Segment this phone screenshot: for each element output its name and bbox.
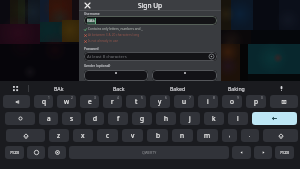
staticText: y [158,97,162,106]
staticText: 6 [165,96,167,100]
staticText: QWERTY [142,150,157,155]
staticText: d [93,114,97,123]
button[interactable]: v [122,129,143,142]
button[interactable]: . [241,129,259,142]
staticText: k [212,114,216,123]
button[interactable]: Close [83,1,92,10]
button[interactable]: b [147,129,168,142]
button[interactable]: m [197,129,218,142]
staticText: b [156,131,160,140]
button[interactable]: u [174,95,194,108]
button[interactable]: ?123 [5,146,24,159]
staticText: t [135,97,138,106]
staticText: p [254,97,258,106]
staticText: Is not already in use [88,39,119,43]
button[interactable]: , [222,129,237,142]
button[interactable]: a [39,112,58,125]
button[interactable]: z [49,129,69,142]
staticText: 7 [189,96,191,100]
button[interactable]: ?123 [275,146,294,159]
staticText: 3 [94,96,96,100]
staticText: 8 [213,96,215,100]
staticText: At least 8 characters [87,54,127,60]
staticText: ?123 [280,150,290,156]
staticText: l [237,114,239,123]
button[interactable]: j [180,112,200,125]
button[interactable]: Backspace [270,95,298,108]
staticText: r [111,97,114,106]
button[interactable]: f [108,112,128,125]
staticText: c [106,131,110,140]
staticText: q [42,97,46,106]
button[interactable] [84,70,148,81]
staticText: h [164,114,169,123]
button[interactable]: e [80,95,99,108]
button[interactable]: Symbols [5,112,35,125]
button[interactable]: Emoji [27,146,45,159]
staticText: 5 [141,96,143,100]
button[interactable]: k [204,112,224,125]
staticText: 2 [71,96,73,100]
button[interactable]: n [172,129,193,142]
button[interactable]: Settings [48,146,66,159]
button[interactable]: Enter [252,112,297,125]
button[interactable]: c [97,129,118,142]
staticText: Baked [170,85,186,92]
staticText: BAk [87,18,95,24]
button[interactable]: Back [89,81,148,95]
button[interactable]: Voice input [276,83,286,93]
button[interactable]: Baked [148,81,207,95]
button[interactable]: Shift [6,129,45,142]
button[interactable]: BAk [29,81,89,95]
staticText: 9 [237,96,239,100]
staticText: 4 [117,96,119,100]
staticText: g [140,114,144,123]
button[interactable]: Baking [207,81,266,95]
staticText: Baking [228,85,245,92]
button[interactable]: Tab [3,95,30,108]
button[interactable]: t [126,95,146,108]
button[interactable]: h [156,112,176,125]
button[interactable]: p [246,95,266,108]
staticText: x [81,131,85,140]
staticText: v [131,131,135,140]
button[interactable]: Move cursor left [232,146,251,159]
staticText: , [229,132,231,139]
button[interactable]: At least 8 characters [84,52,217,61]
button[interactable]: w [57,95,76,108]
staticText: 1 [48,96,50,100]
staticText: Contains only letters, numbers and _ [88,27,143,31]
staticText: s [70,114,74,123]
button[interactable]: BAk [84,16,217,25]
staticText: f [117,114,120,123]
staticText: z [57,131,61,140]
button[interactable]: l [228,112,248,125]
button[interactable]: y [150,95,170,108]
staticText: i [207,97,209,106]
staticText: ?123 [10,150,20,156]
staticText: Sign Up [138,1,163,10]
staticText: e [88,97,92,106]
button[interactable]: QWERTY [69,146,229,159]
staticText: o [230,97,234,106]
staticText: Gender (optional) [84,64,111,68]
staticText: w [64,97,70,106]
button[interactable]: g [132,112,152,125]
button[interactable]: x [73,129,93,142]
button[interactable]: d [85,112,104,125]
staticText: Username [84,12,100,16]
button[interactable]: q [34,95,53,108]
button[interactable] [152,70,217,81]
button[interactable]: Toolbar [10,83,20,93]
button[interactable]: s [62,112,81,125]
button[interactable]: Shift [263,129,298,142]
staticText: . [249,132,251,139]
staticText: n [180,131,185,140]
staticText: At between 3 & 20 characters long [88,33,140,37]
staticText: j [189,114,191,123]
button[interactable]: Move cursor right [254,146,272,159]
button[interactable]: o [222,95,242,108]
staticText: Back [113,85,125,92]
button[interactable]: i [198,95,218,108]
button[interactable]: r [103,95,122,108]
